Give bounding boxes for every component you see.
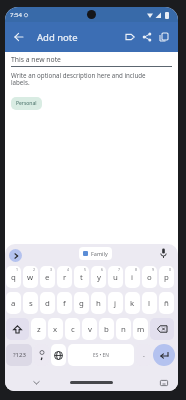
staticText: ?123: [13, 351, 26, 359]
staticText: Family: [91, 250, 108, 257]
staticText: m: [137, 324, 145, 335]
button[interactable]: k: [125, 292, 140, 314]
button[interactable]: b: [99, 318, 114, 340]
button[interactable]: [33, 381, 40, 385]
button[interactable]: [159, 32, 169, 42]
button[interactable]: p: [159, 266, 174, 288]
staticText: ES • EN: [93, 352, 109, 359]
staticText: u: [113, 272, 118, 283]
staticText: o: [147, 272, 152, 283]
staticText: r: [63, 272, 67, 283]
staticText: 4: [67, 267, 70, 272]
button[interactable]: Personal: [11, 97, 42, 110]
staticText: t: [80, 272, 83, 283]
button[interactable]: ?123: [6, 344, 32, 366]
staticText: 5: [84, 267, 87, 272]
staticText: h: [96, 298, 101, 309]
button[interactable]: [160, 380, 168, 386]
staticText: 3: [50, 267, 53, 272]
staticText: 8: [135, 267, 138, 272]
button[interactable]: ES • EN: [68, 344, 134, 366]
staticText: 6: [101, 267, 104, 272]
button[interactable]: l: [142, 292, 157, 314]
button[interactable]: y: [91, 266, 106, 288]
staticText: e: [45, 272, 50, 283]
staticText: c: [71, 324, 75, 335]
button[interactable]: c: [65, 318, 80, 340]
button[interactable]: d: [40, 292, 55, 314]
button[interactable]: r: [57, 266, 72, 288]
button[interactable]: v: [82, 318, 97, 340]
button[interactable]: m: [133, 318, 148, 340]
staticText: 1: [16, 267, 19, 272]
staticText: .: [143, 350, 145, 360]
button[interactable]: g: [74, 292, 89, 314]
staticText: d: [45, 298, 50, 309]
button[interactable]: [150, 318, 174, 340]
staticText: 7:54: [10, 11, 22, 19]
button[interactable]: h: [91, 292, 106, 314]
staticText: n: [121, 324, 126, 335]
staticText: i: [131, 272, 134, 283]
staticText: f: [63, 298, 66, 309]
button[interactable]: t: [74, 266, 89, 288]
button[interactable]: s: [23, 292, 38, 314]
staticText: s: [29, 298, 33, 309]
staticText: 9: [152, 267, 155, 272]
staticText: l: [148, 298, 151, 309]
button[interactable]: ñ: [159, 292, 174, 314]
button[interactable]: [6, 318, 29, 340]
button[interactable]: Family: [79, 247, 112, 260]
button[interactable]: [142, 32, 152, 42]
staticText: ñ: [164, 298, 169, 309]
staticText: g: [79, 298, 84, 309]
staticText: j: [114, 298, 117, 309]
button[interactable]: e: [40, 266, 55, 288]
button[interactable]: q: [6, 266, 21, 288]
staticText: z: [37, 324, 41, 335]
button[interactable]: [153, 344, 175, 366]
button[interactable]: [9, 249, 22, 262]
staticText: k: [130, 298, 135, 309]
button[interactable]: f: [57, 292, 72, 314]
button[interactable]: .: [136, 344, 151, 366]
staticText: a: [11, 298, 16, 309]
button[interactable]: x: [48, 318, 63, 340]
staticText: Write an optional description here and i…: [11, 71, 161, 87]
button[interactable]: j: [108, 292, 123, 314]
button[interactable]: a: [6, 292, 21, 314]
staticText: x: [53, 324, 58, 335]
staticText: 0: [169, 267, 172, 272]
button[interactable]: [160, 248, 167, 259]
button[interactable]: z: [31, 318, 46, 340]
staticText: y: [97, 272, 101, 283]
staticText: Personal: [16, 100, 37, 107]
staticText: This a new note: [11, 55, 61, 64]
button[interactable]: n: [116, 318, 131, 340]
button[interactable]: w: [23, 266, 38, 288]
staticText: 2: [33, 267, 36, 272]
button[interactable]: [34, 344, 49, 366]
staticText: p: [164, 272, 169, 283]
button[interactable]: [51, 344, 66, 366]
button[interactable]: i: [125, 266, 140, 288]
staticText: q: [11, 272, 16, 283]
button[interactable]: u: [108, 266, 123, 288]
staticText: w: [27, 272, 34, 283]
staticText: 7: [118, 267, 121, 272]
button[interactable]: o: [142, 266, 157, 288]
button[interactable]: [14, 32, 24, 42]
staticText: b: [104, 324, 109, 335]
button[interactable]: [125, 32, 135, 42]
staticText: v: [88, 324, 92, 335]
staticText: Add note: [37, 31, 78, 44]
